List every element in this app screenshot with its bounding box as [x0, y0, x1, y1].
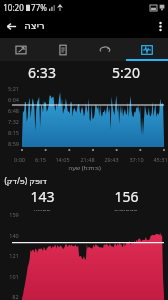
- staticText: 5:21: [8, 85, 19, 92]
- staticText: 29:43: [104, 156, 119, 163]
- staticText: 77%: [31, 2, 47, 13]
- staticText: 14:05: [55, 156, 70, 163]
- staticText: 82: [12, 293, 19, 300]
- staticText: 159: [9, 211, 19, 218]
- staticText: 5:20: [112, 63, 140, 82]
- button[interactable]: Laps: [84, 38, 126, 61]
- staticText: 8:59: [8, 140, 19, 147]
- staticText: 6:48: [8, 107, 19, 114]
- staticText: 37:10: [129, 156, 144, 163]
- staticText: 121: [9, 252, 19, 259]
- staticText: 0:00: [14, 156, 25, 163]
- staticText: ממוצע: [33, 207, 51, 211]
- staticText: 140: [9, 232, 19, 239]
- staticText: ריצה: [24, 20, 45, 32]
- staticText: 6:15: [35, 156, 46, 163]
- staticText: 6:04: [8, 96, 19, 103]
- staticText: 21:48: [80, 156, 95, 163]
- staticText: 6:33: [28, 63, 56, 82]
- button[interactable]: Back: [0, 16, 51, 36]
- staticText: 156: [114, 187, 139, 206]
- staticText: 101: [9, 273, 19, 280]
- staticText: מקסימום: [114, 207, 138, 211]
- staticText: 143: [30, 187, 55, 206]
- button[interactable]: Details: [42, 38, 84, 61]
- staticText: 45:31: [153, 156, 168, 163]
- staticText: 7:32: [8, 118, 19, 125]
- button[interactable]: Map: [0, 38, 42, 61]
- staticText: 8:15: [8, 129, 19, 136]
- staticText: 10:20: [3, 2, 24, 13]
- button[interactable]: More options: [153, 17, 168, 36]
- staticText: שעה (h:m:s): [68, 164, 101, 172]
- button[interactable]: Charts: [126, 38, 168, 61]
- staticText: דופק (פ/דק): [4, 175, 47, 186]
